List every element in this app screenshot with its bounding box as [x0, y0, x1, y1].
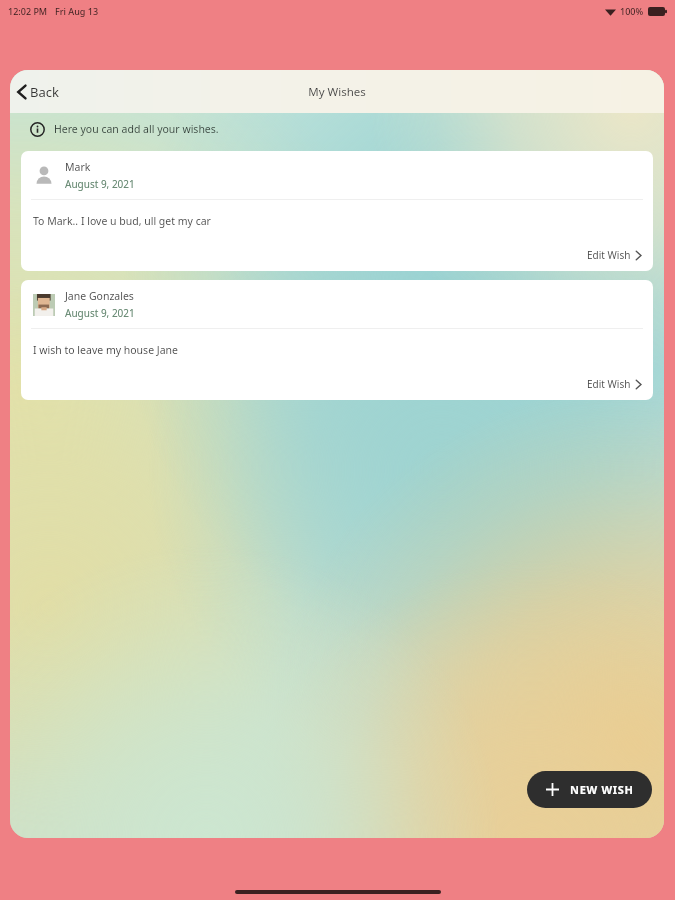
button[interactable]: Edit Wish [587, 246, 653, 271]
staticText: 12:02 PM [8, 5, 48, 17]
button[interactable]: Edit Wish [587, 375, 653, 400]
button[interactable]: Back [10, 70, 69, 113]
staticText: August 9, 2021 [65, 306, 135, 320]
staticText: 100% [620, 5, 644, 17]
staticText: NEW WISH [570, 782, 634, 797]
staticText: Back [30, 83, 59, 101]
staticText: Mark [65, 160, 91, 174]
staticText: Edit Wish [587, 377, 631, 391]
staticText: To Mark.. I love u bud, ull get my car [33, 214, 211, 228]
button[interactable]: NEW WISH [527, 771, 652, 808]
button[interactable]: Mark [21, 151, 653, 271]
staticText: August 9, 2021 [65, 177, 135, 191]
staticText: Fri Aug 13 [55, 5, 99, 17]
staticText: My Wishes [308, 84, 366, 100]
staticText: Jane Gonzales [65, 289, 134, 303]
staticText: Edit Wish [587, 248, 631, 262]
button[interactable]: Jane Gonzales [21, 280, 653, 400]
staticText: Here you can add all your wishes. [54, 122, 219, 136]
staticText: I wish to leave my house Jane [33, 343, 178, 357]
